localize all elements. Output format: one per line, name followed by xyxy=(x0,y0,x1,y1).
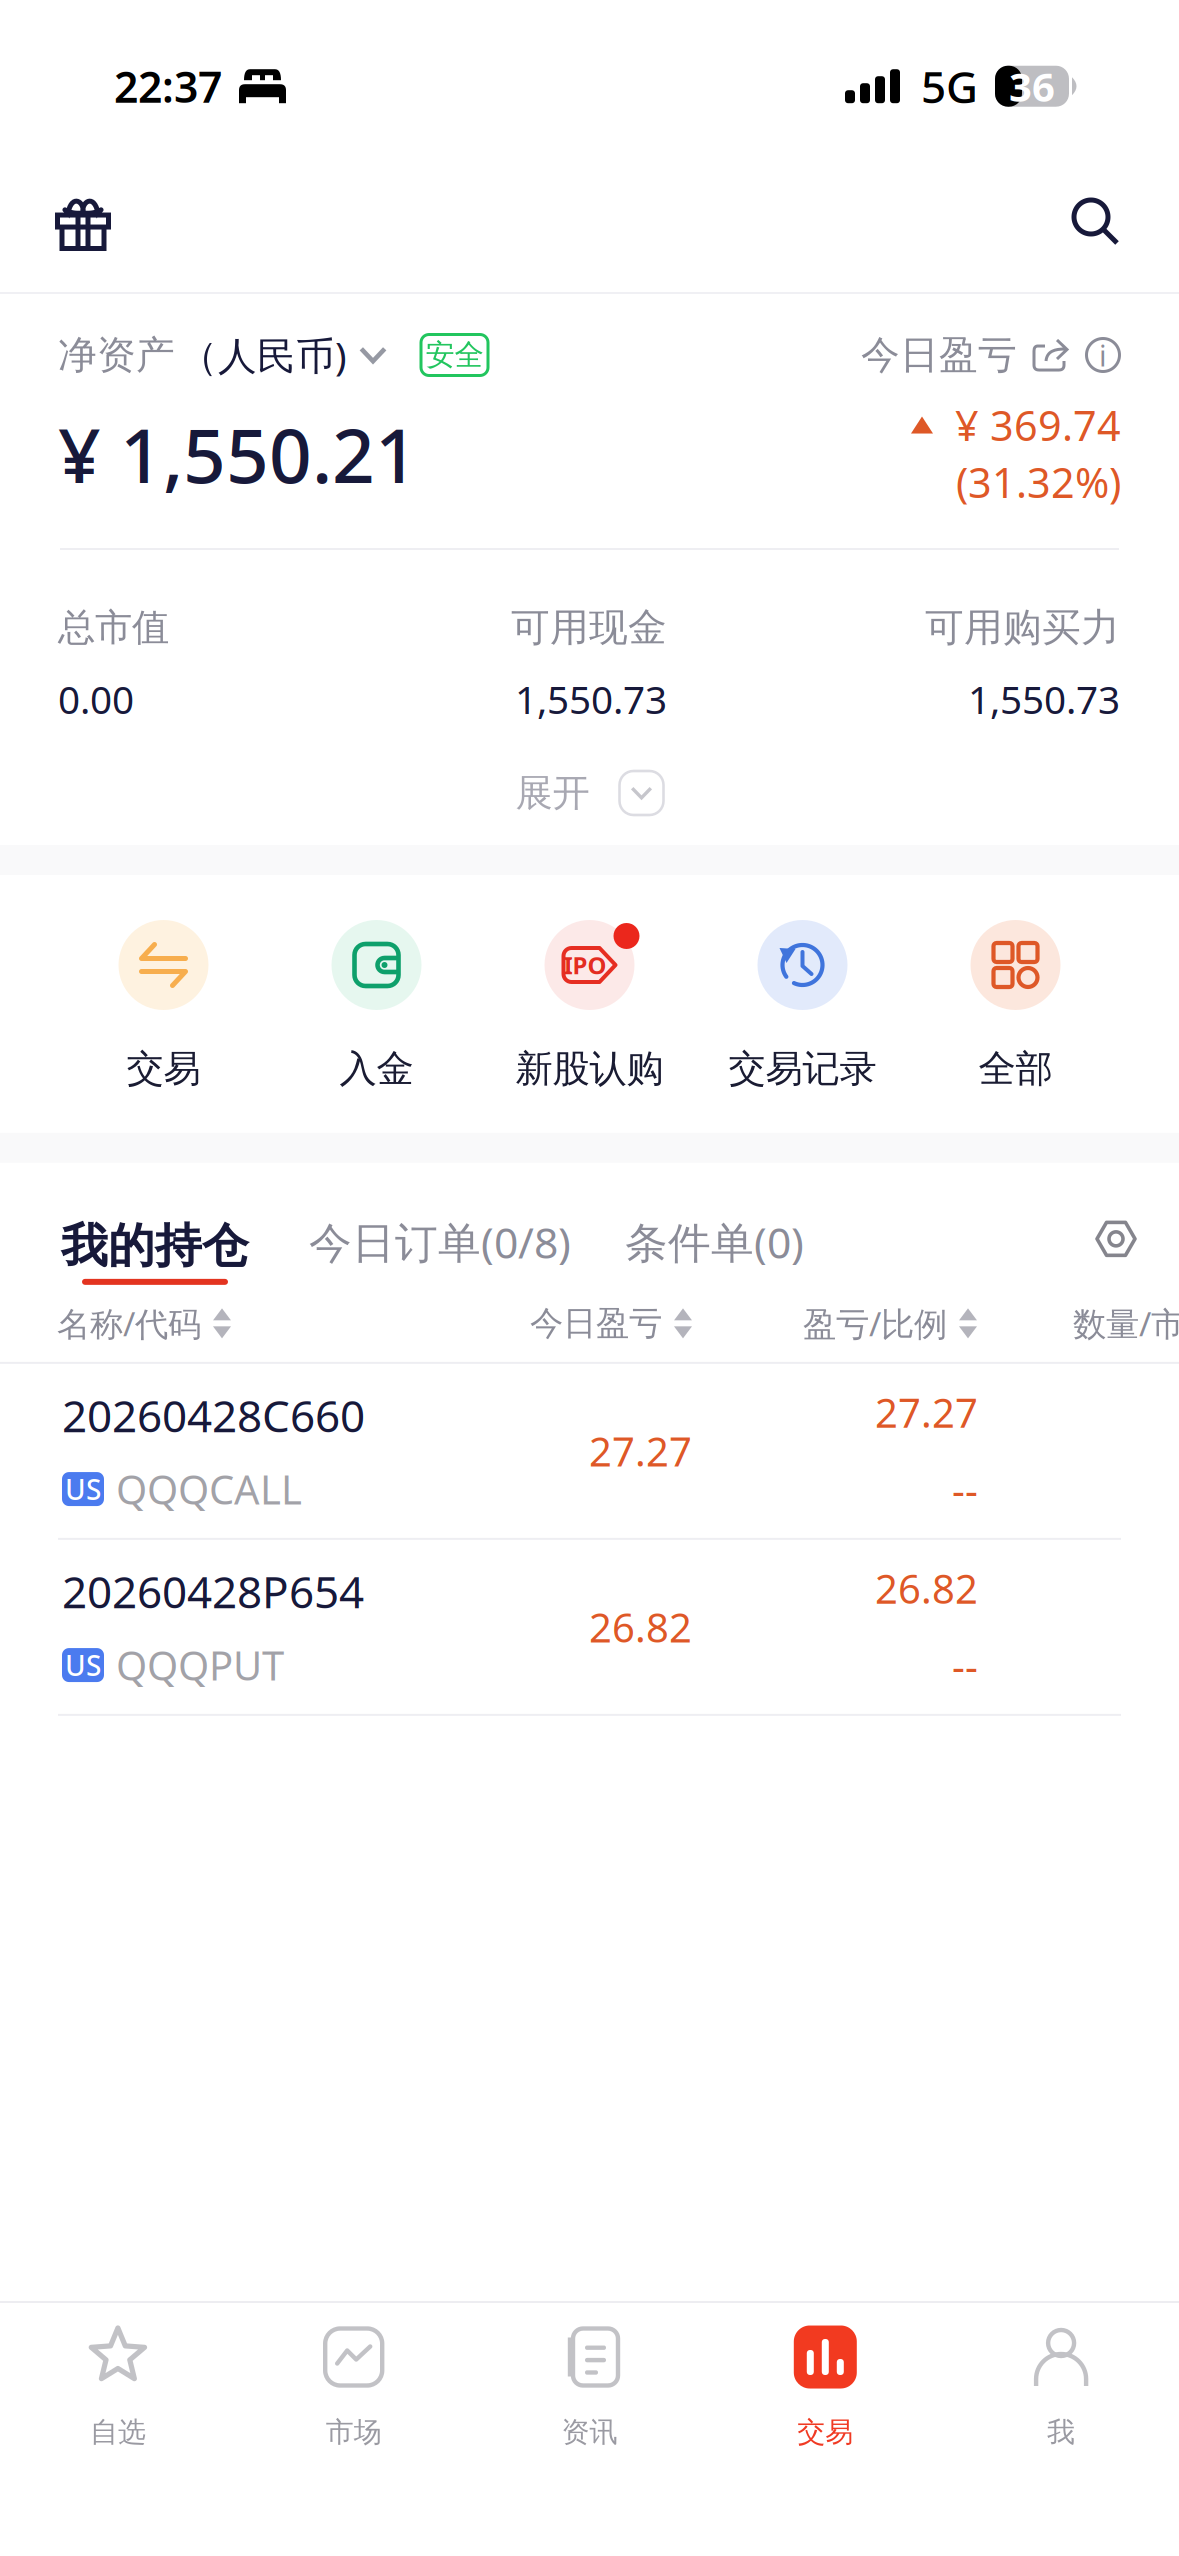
staticText: -- xyxy=(952,1463,978,1516)
button[interactable]: 交易 xyxy=(57,920,270,1092)
staticText: 26.82 xyxy=(589,1600,692,1653)
staticText: ¥ 1,550.21 xyxy=(58,404,418,504)
button[interactable]: 全部 xyxy=(909,920,1122,1092)
staticText: 今日盈亏 xyxy=(530,1303,662,1344)
staticText: 自选 xyxy=(90,2415,146,2449)
staticText: 1,550.73 xyxy=(515,673,667,725)
staticText: 总市值 xyxy=(58,605,169,650)
staticText: US xyxy=(65,1646,101,1684)
staticText: IPO xyxy=(563,949,606,981)
button[interactable]: 我的持仓 xyxy=(61,1223,249,1285)
staticText: 可用购买力 xyxy=(925,604,1120,651)
staticText: 27.27 xyxy=(589,1424,692,1477)
staticText: QQQPUT xyxy=(116,1638,284,1692)
staticText: 数量/市值 xyxy=(1073,1301,1179,1345)
button[interactable]: Rewards xyxy=(48,187,118,257)
staticText: ¥ 369.74 xyxy=(955,398,1121,452)
staticText: US xyxy=(65,1470,101,1508)
staticText: 资讯 xyxy=(561,2415,617,2449)
staticText: 盈亏/比例 xyxy=(803,1301,947,1345)
staticText: i xyxy=(1099,335,1107,374)
button[interactable]: 资讯 xyxy=(472,2325,707,2449)
button[interactable]: 交易记录 xyxy=(696,920,909,1092)
staticText: 20260428P654 xyxy=(62,1562,364,1620)
staticText: 20260428C660 xyxy=(62,1386,365,1444)
staticText: 入金 xyxy=(339,1046,413,1092)
staticText: (31.32%) xyxy=(956,455,1121,509)
staticText: -- xyxy=(952,1639,978,1692)
staticText: 交易 xyxy=(797,2415,853,2449)
staticText: 全部 xyxy=(978,1046,1052,1092)
button[interactable]: 今日订单(0/8) xyxy=(309,1220,571,1285)
staticText: 1,550.73 xyxy=(968,673,1120,725)
staticText: 展开 xyxy=(515,770,589,816)
staticText: 22:37 xyxy=(114,58,222,115)
button[interactable]: 入金 xyxy=(270,920,483,1092)
button[interactable]: IPO xyxy=(483,920,696,1092)
button[interactable]: 条件单(0) xyxy=(625,1220,804,1285)
button[interactable]: 市场 xyxy=(236,2325,472,2449)
staticText: 交易记录 xyxy=(728,1046,876,1092)
button[interactable]: 20260428P654 xyxy=(0,1540,1179,1716)
staticText: 市场 xyxy=(326,2415,382,2449)
button[interactable]: 20260428C660 xyxy=(0,1364,1179,1540)
staticText: 5G xyxy=(921,57,978,115)
staticText: 今日盈亏 xyxy=(861,331,1017,379)
staticText: 净资产 xyxy=(58,331,175,379)
button[interactable]: 交易 xyxy=(707,2325,943,2449)
staticText: 交易 xyxy=(126,1046,200,1092)
staticText: 条件单(0) xyxy=(625,1213,804,1270)
button[interactable]: Search xyxy=(1061,187,1131,257)
button[interactable]: 展开 xyxy=(515,771,663,815)
staticText: 27.27 xyxy=(875,1386,978,1439)
staticText: 安全 xyxy=(425,337,483,373)
staticText: 今日订单(0/8) xyxy=(309,1213,571,1270)
staticText: 我的持仓 xyxy=(61,1217,249,1274)
staticText: QQQCALL xyxy=(116,1462,302,1516)
staticText: 0.00 xyxy=(58,673,134,725)
staticText: 36 xyxy=(1009,60,1055,113)
button[interactable]: Settings xyxy=(1095,1218,1137,1285)
staticText: 26.82 xyxy=(875,1562,978,1615)
staticText: 名称/代码 xyxy=(57,1301,201,1345)
staticText: （人民币) xyxy=(179,329,347,381)
button[interactable]: 我 xyxy=(943,2325,1179,2449)
staticText: 新股认购 xyxy=(515,1046,663,1092)
staticText: 可用现金 xyxy=(511,604,667,651)
staticText: 我 xyxy=(1047,2415,1075,2449)
button[interactable]: 自选 xyxy=(0,2325,236,2449)
